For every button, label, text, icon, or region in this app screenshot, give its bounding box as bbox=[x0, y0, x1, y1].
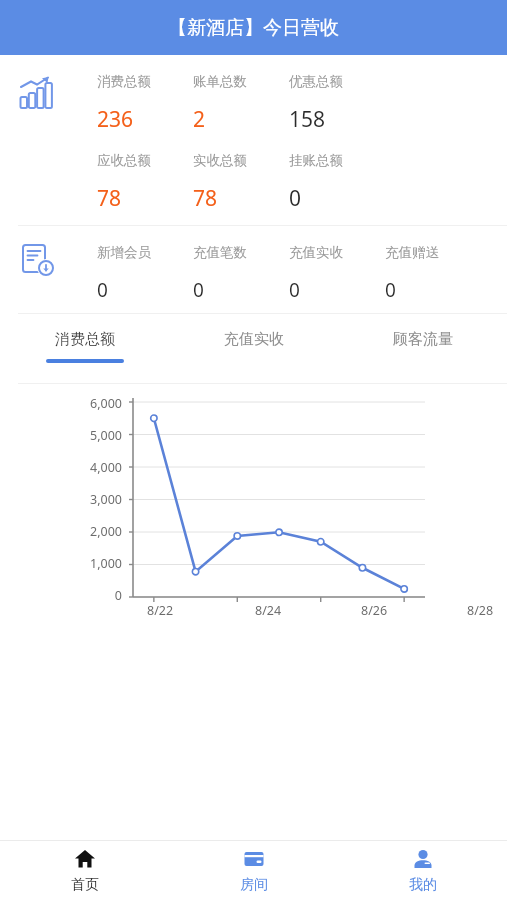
staticText: 新增会员 bbox=[97, 244, 151, 261]
staticText: 4,000 bbox=[90, 459, 122, 476]
other: 房间 bbox=[243, 848, 265, 870]
staticText: 充值赠送 bbox=[385, 244, 439, 261]
staticText: 充值实收 bbox=[289, 244, 343, 261]
staticText: 消费总额 bbox=[55, 330, 115, 349]
staticText: 8/26 bbox=[361, 602, 388, 619]
button[interactable]: 我的 bbox=[338, 841, 507, 900]
staticText: 充值笔数 bbox=[193, 244, 247, 261]
staticText: 账单总数 bbox=[193, 73, 247, 90]
staticText: 236 bbox=[97, 105, 134, 134]
staticText: 6,000 bbox=[90, 395, 122, 412]
staticText: 5,000 bbox=[90, 427, 122, 444]
other: 我的 bbox=[412, 848, 434, 870]
staticText: 0 bbox=[385, 277, 396, 303]
staticText: 实收总额 bbox=[193, 152, 247, 169]
staticText: 我的 bbox=[409, 876, 437, 894]
other: 首页 bbox=[74, 848, 96, 870]
staticText: 3,000 bbox=[90, 491, 122, 508]
staticText: 充值实收 bbox=[224, 330, 284, 349]
staticText: 房间 bbox=[240, 876, 268, 894]
staticText: 158 bbox=[289, 105, 326, 134]
staticText: 消费总额 bbox=[97, 73, 151, 90]
staticText: 78 bbox=[97, 184, 122, 213]
staticText: 2,000 bbox=[90, 523, 122, 540]
staticText: 1,000 bbox=[90, 555, 122, 572]
staticText: 应收总额 bbox=[97, 152, 151, 169]
staticText: 挂账总额 bbox=[289, 152, 343, 169]
staticText: 0 bbox=[114, 587, 122, 604]
button[interactable]: 首页 bbox=[0, 841, 169, 900]
button[interactable]: 消费总额 bbox=[0, 314, 169, 384]
staticText: 0 bbox=[289, 184, 302, 213]
button[interactable]: 房间 bbox=[169, 841, 338, 900]
staticText: 8/22 bbox=[147, 602, 174, 619]
staticText: 2 bbox=[193, 105, 206, 134]
staticText: 0 bbox=[193, 277, 204, 303]
staticText: 78 bbox=[193, 184, 218, 213]
staticText: 8/24 bbox=[255, 602, 282, 619]
staticText: 顾客流量 bbox=[393, 330, 453, 349]
staticText: 0 bbox=[97, 277, 108, 303]
staticText: 0 bbox=[289, 277, 300, 303]
staticText: 【新酒店】今日营收 bbox=[168, 16, 339, 40]
button[interactable]: 充值实收 bbox=[169, 314, 338, 384]
staticText: 8/28 bbox=[467, 602, 494, 619]
staticText: 优惠总额 bbox=[289, 73, 343, 90]
button[interactable]: 顾客流量 bbox=[338, 314, 507, 384]
staticText: 首页 bbox=[71, 876, 99, 894]
